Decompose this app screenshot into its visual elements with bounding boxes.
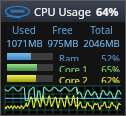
staticText: Total	[90, 23, 113, 37]
staticText: 65%	[101, 63, 120, 72]
staticText: 52%	[101, 52, 120, 61]
button[interactable]: Intel logo	[1, 1, 125, 22]
staticText: Used	[12, 23, 36, 37]
other: Intel logo	[5, 4, 30, 19]
staticText: Core 1	[59, 63, 88, 72]
button[interactable]: Core 1	[1, 63, 125, 72]
staticText: 975MB	[47, 37, 79, 50]
staticText: 62%	[101, 74, 120, 83]
staticText: 1071MB	[6, 37, 43, 50]
button[interactable]: Core 2	[1, 74, 125, 83]
button[interactable]: CPU history graph	[5, 86, 121, 113]
staticText: 2046MB	[83, 37, 120, 50]
staticText: 64%	[96, 4, 119, 19]
staticText: Ram	[59, 52, 80, 61]
staticText: CPU Usage	[34, 4, 91, 19]
button[interactable]: Ram	[1, 52, 125, 61]
staticText: Free	[52, 23, 73, 37]
staticText: Core 2	[59, 74, 88, 83]
